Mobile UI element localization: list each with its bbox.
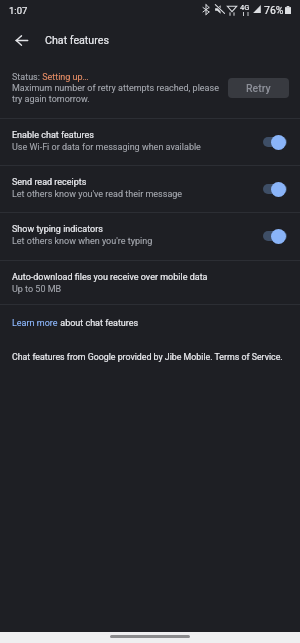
button[interactable]: Enable chat features <box>0 118 300 165</box>
staticText: Chat features <box>45 34 109 47</box>
button[interactable]: Retry <box>228 78 289 98</box>
button[interactable]: Send read receipts <box>0 165 300 212</box>
staticText: Auto-download files you receive over mob… <box>12 272 208 283</box>
staticText: about chat features <box>58 318 139 329</box>
staticText: Up to 50 MB <box>12 284 62 295</box>
staticText: 4G <box>240 3 250 12</box>
staticText: Send read receipts <box>12 177 87 188</box>
staticText: Maximum number of retry attempts reached… <box>12 83 219 94</box>
button[interactable]: Learn more <box>12 318 58 329</box>
staticText: try again tomorrow. <box>12 94 90 105</box>
staticText: Use Wi-Fi or data for messaging when ava… <box>12 142 201 153</box>
staticText: Retry <box>246 82 271 94</box>
button[interactable]: Auto-download files you receive over mob… <box>0 260 300 304</box>
staticText: Chat features from Google provided by Ji… <box>12 352 283 362</box>
staticText: 76% <box>264 4 284 16</box>
staticText: Enable chat features <box>12 130 94 141</box>
button[interactable]: Navigate up <box>8 27 34 53</box>
staticText: Let others know you've read their messag… <box>12 189 183 200</box>
staticText: Let others know when you're typing <box>12 236 153 247</box>
staticText: Status: Setting up… <box>12 72 89 83</box>
button[interactable]: Show typing indicators <box>0 212 300 259</box>
staticText: Show typing indicators <box>12 224 103 235</box>
staticText: 1:07 <box>9 5 28 16</box>
